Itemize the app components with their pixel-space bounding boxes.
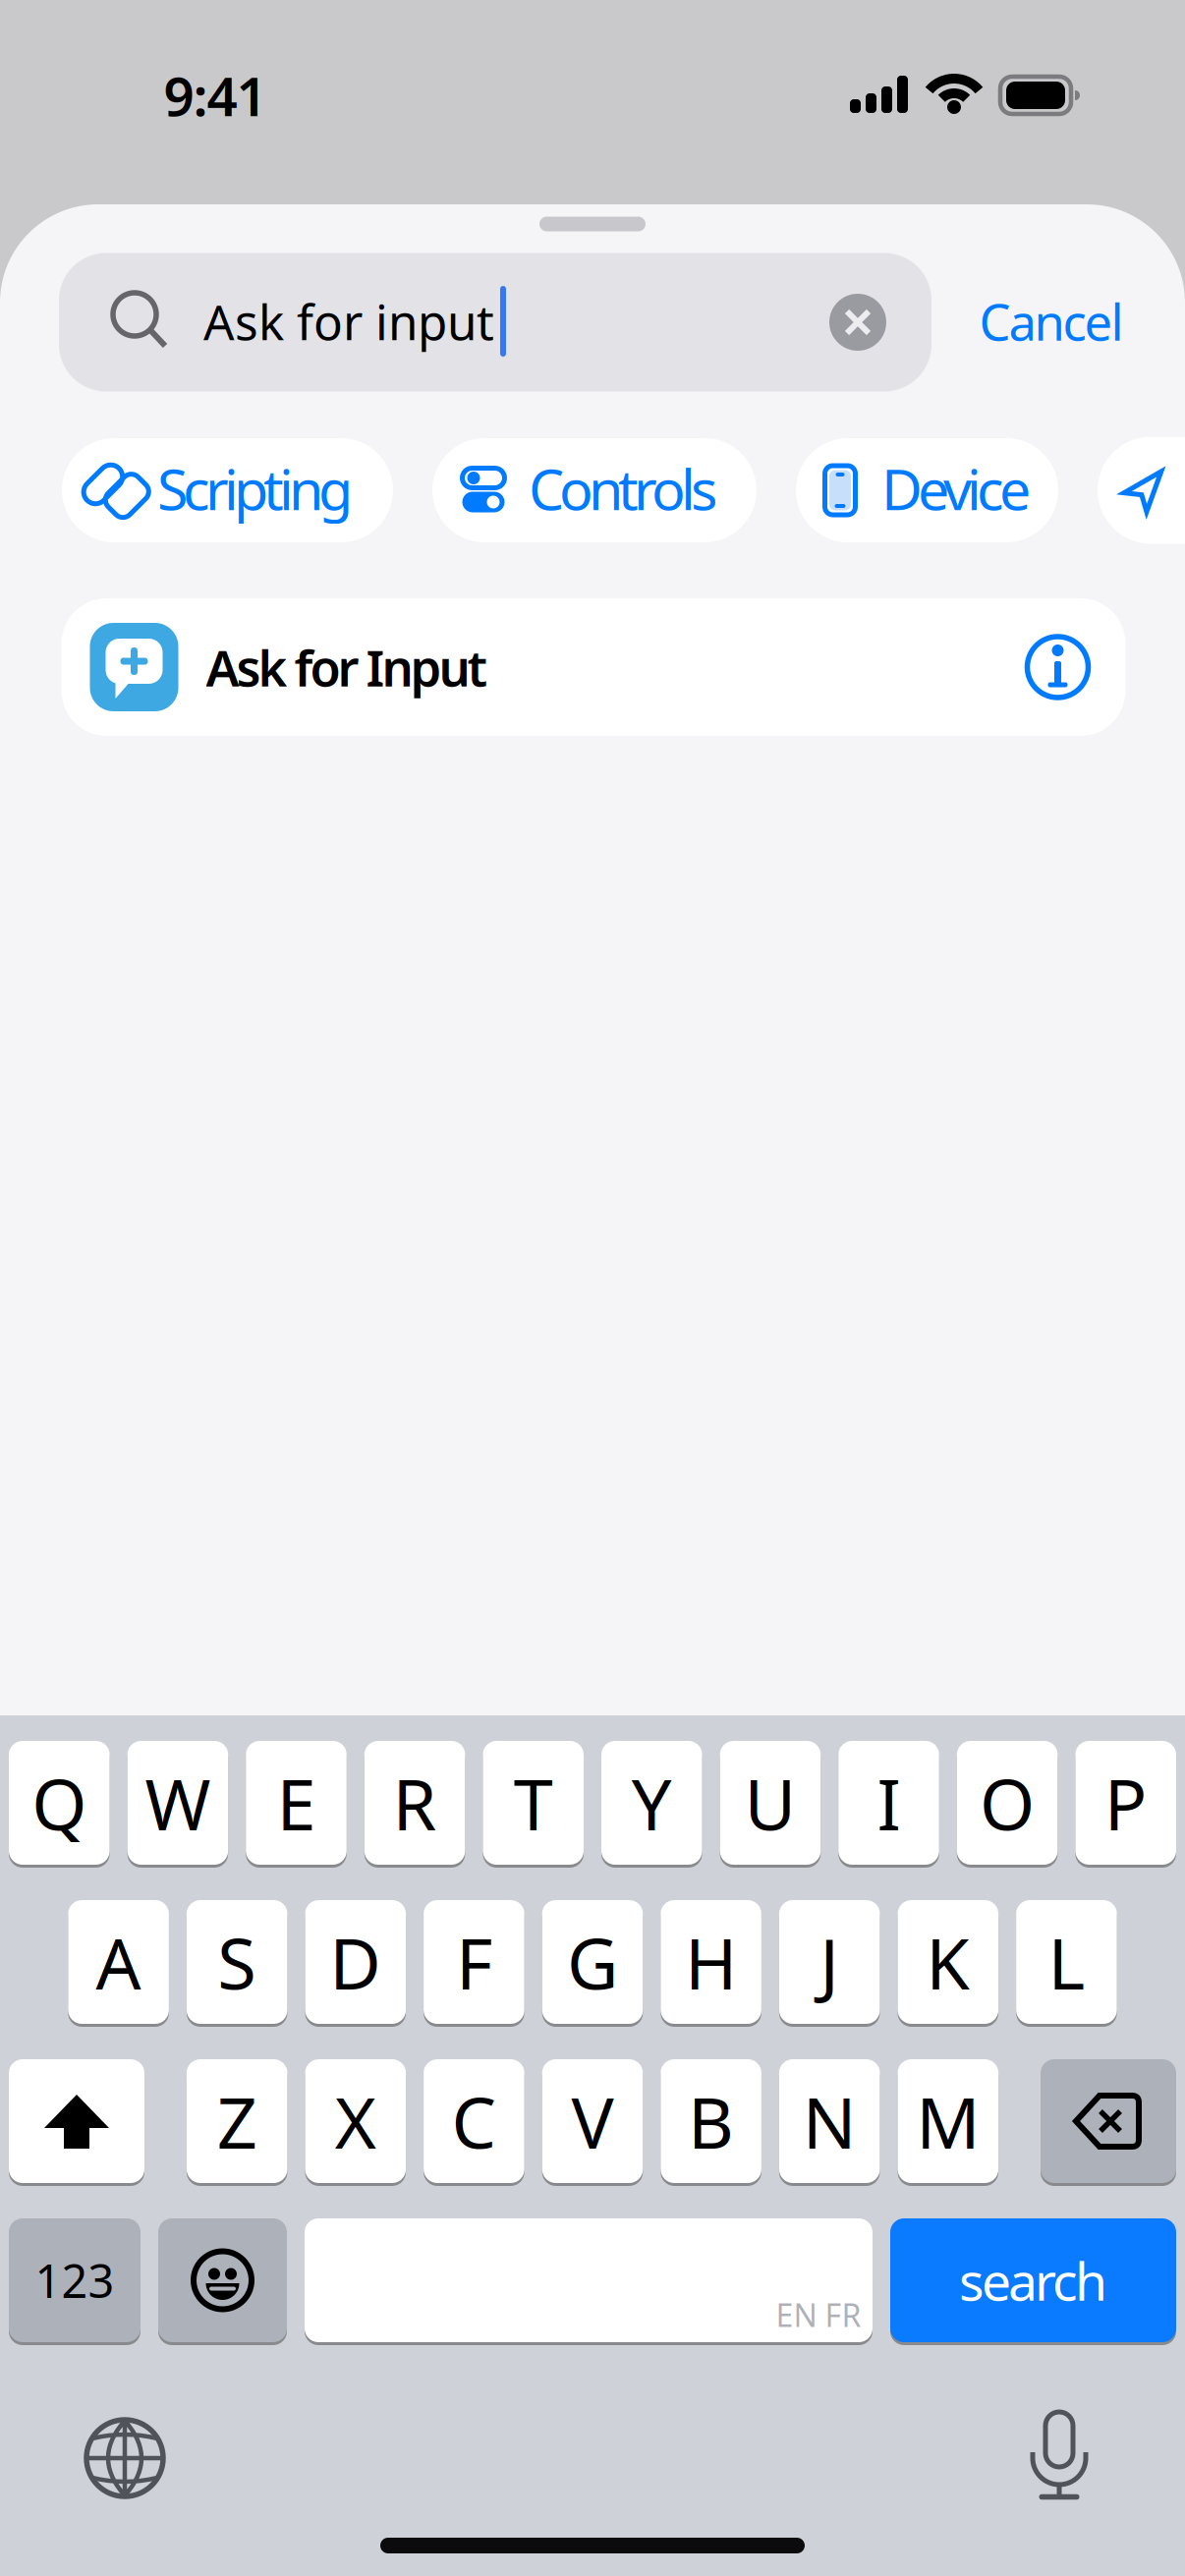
button[interactable]: Ask for Input bbox=[61, 598, 1126, 736]
staticText: N bbox=[802, 2074, 857, 2168]
staticText: V bbox=[571, 2074, 614, 2168]
staticText: D bbox=[329, 1915, 382, 2009]
staticText: Z bbox=[217, 2074, 257, 2168]
button[interactable]: Q bbox=[9, 1741, 110, 1865]
staticText: P bbox=[1104, 1756, 1147, 1850]
button[interactable]: Z bbox=[187, 2059, 287, 2183]
staticText: Device bbox=[881, 451, 1031, 526]
button[interactable]: B bbox=[661, 2059, 761, 2183]
button[interactable]: F bbox=[424, 1900, 524, 2024]
button[interactable]: M bbox=[898, 2059, 998, 2183]
staticText: B bbox=[688, 2074, 734, 2168]
button[interactable]: W bbox=[127, 1741, 228, 1865]
button[interactable]: C bbox=[424, 2059, 524, 2183]
staticText: R bbox=[393, 1756, 437, 1850]
staticText: J bbox=[820, 1915, 839, 2009]
button[interactable]: Device bbox=[796, 438, 1058, 542]
button[interactable]: J bbox=[779, 1900, 880, 2024]
button[interactable]: X bbox=[305, 2059, 406, 2183]
staticText: Cancel bbox=[979, 288, 1124, 354]
staticText: O bbox=[980, 1756, 1035, 1850]
button[interactable]: Scripting bbox=[62, 438, 393, 542]
button[interactable]: Space bbox=[305, 2218, 873, 2342]
button[interactable]: Cancel bbox=[979, 288, 1124, 354]
button[interactable]: 123 bbox=[9, 2218, 141, 2342]
staticText: Ask for input bbox=[203, 289, 494, 353]
button[interactable]: L bbox=[1016, 1900, 1117, 2024]
staticText: search bbox=[959, 2246, 1107, 2315]
button[interactable]: N bbox=[779, 2059, 880, 2183]
staticText: 123 bbox=[35, 2250, 114, 2311]
button[interactable]: T bbox=[483, 1741, 584, 1865]
staticText: L bbox=[1048, 1915, 1085, 2009]
staticText: EN FR bbox=[776, 2294, 861, 2336]
staticText: W bbox=[145, 1756, 211, 1850]
button[interactable]: E bbox=[246, 1741, 347, 1865]
staticText: I bbox=[877, 1756, 901, 1850]
button[interactable]: V bbox=[542, 2059, 643, 2183]
staticText: Controls bbox=[529, 451, 717, 526]
button[interactable]: S bbox=[187, 1900, 287, 2024]
button[interactable]: O bbox=[957, 1741, 1058, 1865]
staticText: M bbox=[916, 2074, 980, 2168]
button[interactable]: Shift bbox=[9, 2059, 144, 2183]
button[interactable]: Next keyboard bbox=[81, 2414, 169, 2502]
staticText: K bbox=[926, 1915, 970, 2009]
staticText: H bbox=[685, 1915, 737, 2009]
button[interactable]: H bbox=[661, 1900, 761, 2024]
button[interactable]: D bbox=[305, 1900, 406, 2024]
button[interactable]: Clear text bbox=[829, 294, 886, 351]
staticText: 9:41 bbox=[164, 60, 267, 131]
staticText: C bbox=[451, 2074, 497, 2168]
button[interactable]: I bbox=[838, 1741, 939, 1865]
button[interactable]: R bbox=[364, 1741, 465, 1865]
button[interactable]: Dictation bbox=[1022, 2409, 1097, 2497]
staticText: E bbox=[277, 1756, 316, 1850]
staticText: S bbox=[217, 1915, 257, 2009]
staticText: X bbox=[335, 2074, 376, 2168]
staticText: U bbox=[744, 1756, 796, 1850]
button[interactable]: U bbox=[720, 1741, 821, 1865]
button[interactable]: Delete bbox=[1041, 2059, 1176, 2183]
staticText: Scripting bbox=[157, 451, 353, 526]
button[interactable]: A bbox=[68, 1900, 169, 2024]
staticText: Y bbox=[632, 1756, 672, 1850]
staticText: Q bbox=[32, 1756, 87, 1850]
staticText: Ask for Input bbox=[206, 634, 488, 700]
button[interactable]: G bbox=[542, 1900, 643, 2024]
button[interactable]: Controls bbox=[432, 438, 757, 542]
button[interactable]: Y bbox=[601, 1741, 702, 1865]
button[interactable]: K bbox=[898, 1900, 998, 2024]
button[interactable]: Emoji bbox=[158, 2218, 287, 2342]
button[interactable]: search bbox=[890, 2218, 1176, 2342]
button[interactable]: P bbox=[1075, 1741, 1176, 1865]
staticText: F bbox=[456, 1915, 492, 2009]
staticText: G bbox=[567, 1915, 618, 2009]
button[interactable]: Location bbox=[1098, 437, 1185, 544]
staticText: A bbox=[96, 1915, 141, 2009]
staticText: T bbox=[514, 1756, 553, 1850]
